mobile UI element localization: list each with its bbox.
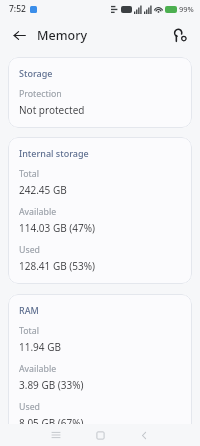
staticText: Protection: [19, 88, 62, 100]
staticText: RAM: [19, 304, 39, 316]
button[interactable]: Back: [6, 22, 32, 48]
staticText: Used: [19, 401, 41, 413]
button[interactable]: Internal storage: [8, 137, 192, 284]
staticText: 8.05 GB (67%): [19, 416, 84, 430]
staticText: Not protected: [19, 103, 85, 117]
staticText: Used: [19, 244, 41, 256]
staticText: 11.94 GB: [19, 340, 61, 354]
staticText: Internal storage: [19, 147, 89, 159]
button[interactable]: Recent apps: [45, 424, 67, 446]
staticText: Total: [19, 168, 39, 180]
staticText: 3.89 GB (33%): [19, 378, 84, 392]
staticText: 99%: [179, 4, 194, 14]
button[interactable]: Search settings: [167, 22, 193, 48]
button[interactable]: RAM: [8, 294, 192, 441]
staticText: Available: [19, 206, 57, 218]
staticText: Memory: [37, 27, 88, 44]
button[interactable]: Storage: [8, 57, 192, 128]
staticText: 114.03 GB (47%): [19, 221, 96, 235]
button[interactable]: Back: [133, 424, 155, 446]
staticText: Available: [19, 363, 57, 375]
staticText: 242.45 GB: [19, 183, 67, 197]
staticText: Total: [19, 325, 39, 337]
staticText: Storage: [19, 67, 53, 79]
staticText: 128.41 GB (53%): [19, 259, 96, 273]
button[interactable]: Home: [89, 424, 111, 446]
staticText: 7:52: [9, 3, 26, 15]
